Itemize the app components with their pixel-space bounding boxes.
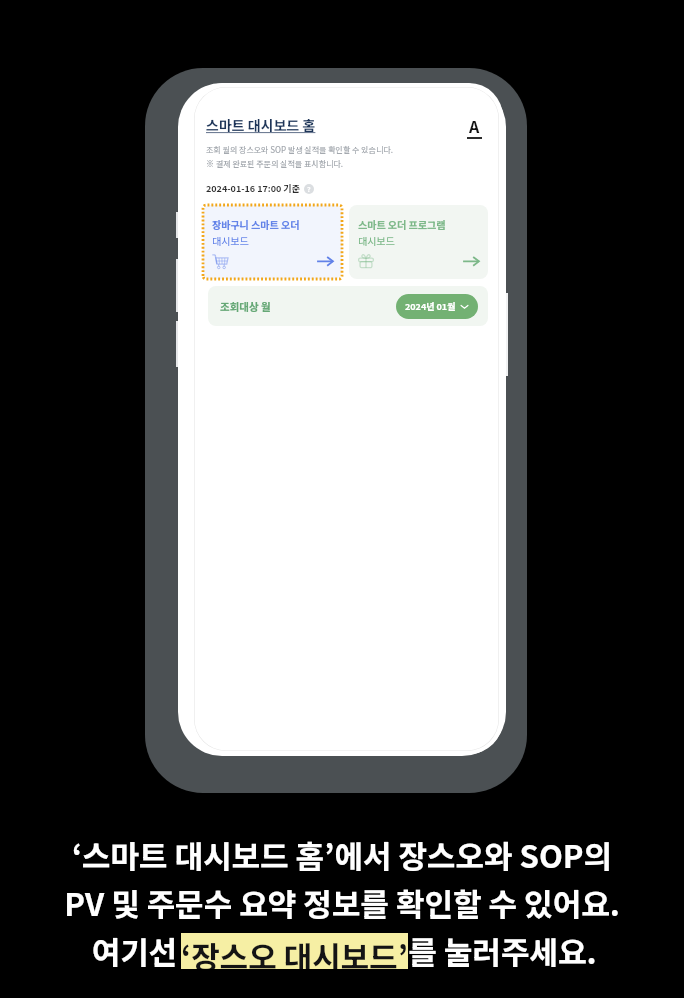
staticText: 스마트 오더 프로그램: [358, 217, 446, 231]
staticText: PV 및 주문수 요약 정보를 확인할 수 있어요.: [64, 880, 620, 925]
staticText: 를 눌러주세요.: [408, 928, 597, 973]
staticText: ※ 결제 완료된 주문의 실적을 표시합니다.: [206, 158, 343, 170]
button[interactable]: 조회대상 월: [208, 286, 488, 326]
staticText: 2024-01-16 17:00 기준: [206, 182, 300, 195]
button[interactable]: Help: [304, 184, 314, 194]
button[interactable]: Font size: [467, 114, 482, 139]
staticText: ‘스마트 대시보드 홈’에서 장스오와 SOP의: [72, 832, 612, 877]
staticText: 2024년 01월: [405, 300, 456, 313]
staticText: 조회 월의 장스오와 SOP 발생 실적을 확인할 수 있습니다.: [206, 144, 393, 156]
staticText: 대시보드: [212, 233, 249, 247]
staticText: 여기선: [88, 928, 181, 973]
staticText: 대시보드: [358, 233, 395, 247]
staticText: A: [469, 114, 480, 137]
button[interactable]: 장바구니 스마트 오더: [203, 205, 342, 279]
button[interactable]: 2024년 01월: [396, 294, 478, 319]
staticText: ‘장스오 대시보드’: [181, 933, 408, 969]
staticText: 장바구니 스마트 오더: [212, 217, 300, 231]
button[interactable]: 스마트 오더 프로그램: [349, 205, 488, 279]
staticText: 스마트 대시보드 홈: [206, 115, 316, 135]
staticText: 조회대상 월: [220, 299, 271, 314]
staticText: ?: [307, 184, 311, 194]
